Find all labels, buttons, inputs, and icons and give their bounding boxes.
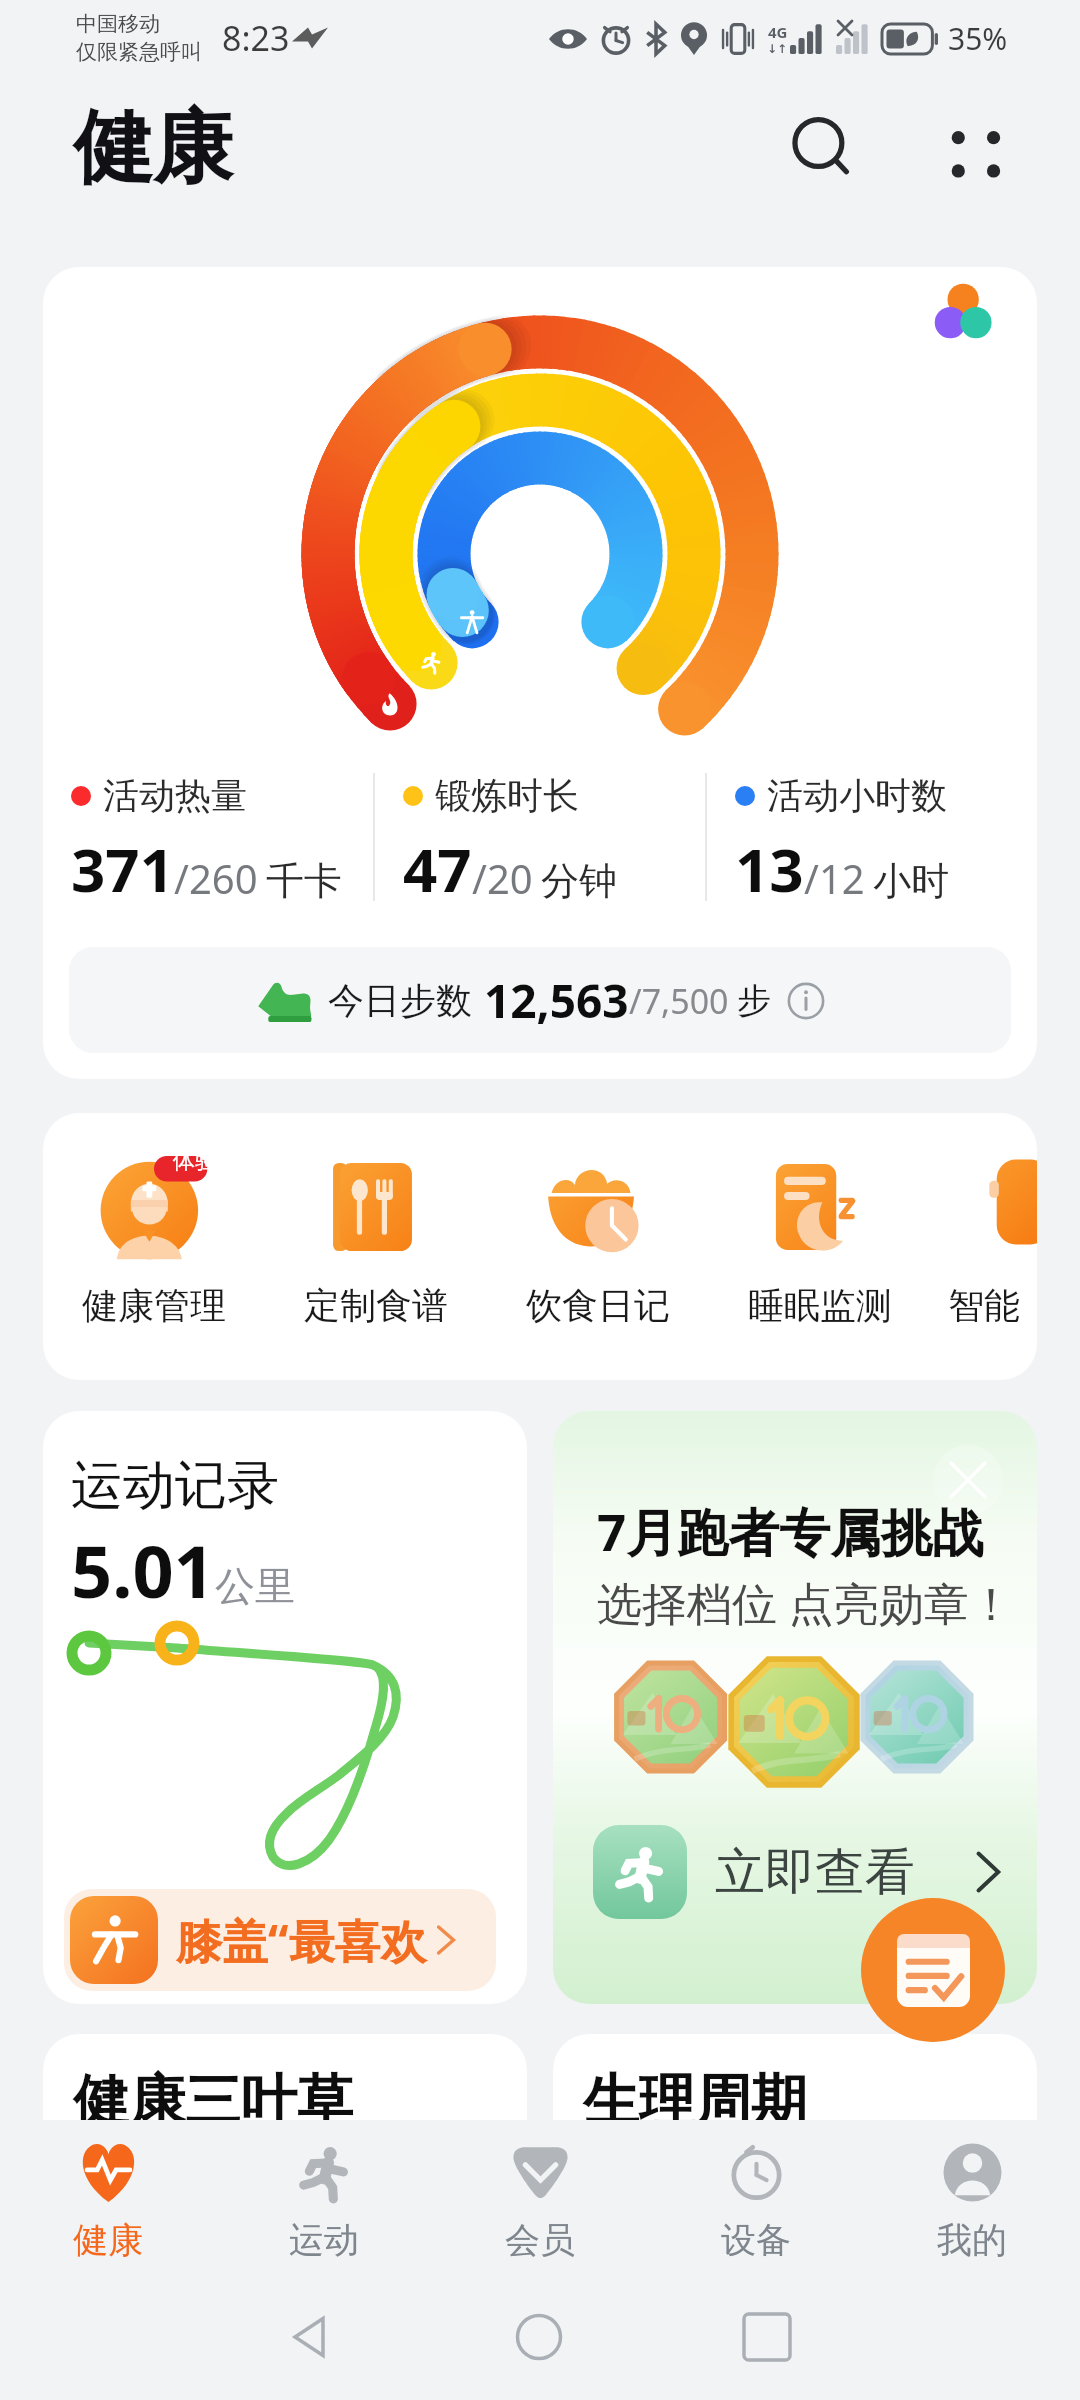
staticText: 会员 — [505, 2218, 575, 2262]
button[interactable]: More options — [912, 95, 1032, 215]
button[interactable]: Add record — [861, 1898, 1005, 2042]
staticText: 睡眠监测 — [748, 1283, 892, 1328]
staticText: 立即查看 — [715, 1841, 915, 1904]
staticText: 活动小时数 — [767, 773, 947, 818]
button[interactable]: Close — [933, 1445, 1003, 1515]
staticText: 健康 — [73, 98, 233, 199]
button[interactable]: Recents — [707, 2277, 827, 2397]
staticText: 8:23 — [222, 15, 290, 61]
staticText: 体验 — [173, 1147, 217, 1175]
staticText: 12,563 — [484, 969, 629, 1032]
staticText: 今日步数 — [328, 978, 472, 1023]
staticText: 371 — [71, 828, 174, 910]
button[interactable]: 健康三叶草 — [43, 2034, 527, 2214]
staticText: 定制食谱 — [304, 1283, 448, 1328]
button[interactable]: 智能 — [931, 1149, 1037, 1328]
button[interactable]: 饮食日记 — [487, 1149, 709, 1328]
staticText: ↓↑ — [767, 42, 788, 56]
button[interactable]: 生理周期 — [553, 2034, 1037, 2214]
staticText: 千卡 — [266, 857, 342, 905]
button[interactable]: Home — [479, 2277, 599, 2397]
staticText: 仅限紧急呼叫 — [76, 39, 202, 65]
staticText: 锻炼时长 — [435, 773, 579, 818]
button[interactable]: Search — [764, 90, 884, 210]
staticText: 分钟 — [541, 857, 617, 905]
staticText: 设备 — [721, 2218, 791, 2262]
staticText: 5.01 — [71, 1521, 215, 1619]
staticText: 生理周期 — [583, 2066, 807, 2137]
button[interactable]: Back — [250, 2277, 370, 2397]
staticText: 7月跑者专属挑战 — [597, 1496, 984, 1566]
button[interactable]: 今日步数 — [69, 947, 1011, 1053]
button[interactable]: 健康 — [0, 2120, 216, 2277]
button[interactable]: 设备 — [648, 2120, 864, 2277]
button[interactable]: 膝盖“最喜欢 — [64, 1889, 496, 1991]
staticText: 运动 — [289, 2218, 359, 2262]
button[interactable]: 活动热量 — [43, 267, 1037, 1079]
button[interactable]: 运动 — [216, 2120, 432, 2277]
staticText: /260 — [174, 851, 258, 905]
staticText: 47 — [403, 828, 472, 910]
button[interactable]: 定制食谱 — [265, 1149, 487, 1328]
staticText: 35% — [948, 18, 1008, 59]
staticText: 我的 — [937, 2218, 1007, 2262]
staticText: 健康三叶草 — [73, 2066, 353, 2137]
staticText: /7,500 — [629, 978, 729, 1024]
staticText: 中国移动 — [76, 11, 160, 37]
button[interactable]: 睡眠监测 — [709, 1149, 931, 1328]
staticText: 小时 — [873, 857, 949, 905]
staticText: 公里 — [215, 1561, 295, 1611]
button[interactable]: 会员 — [432, 2120, 648, 2277]
staticText: 活动热量 — [103, 773, 247, 818]
staticText: 4G — [768, 22, 788, 42]
staticText: 饮食日记 — [526, 1283, 670, 1328]
staticText: 健康 — [73, 2218, 143, 2262]
staticText: 选择档位 点亮勋章！ — [597, 1572, 1014, 1633]
staticText: 健康管理 — [82, 1283, 226, 1328]
staticText: 运动记录 — [71, 1453, 279, 1519]
staticText: 智能 — [948, 1283, 1020, 1328]
staticText: /20 — [472, 851, 533, 905]
staticText: 步 — [737, 979, 771, 1022]
button[interactable]: 运动记录 — [43, 1411, 527, 2004]
staticText: 13 — [735, 828, 804, 910]
staticText: 膝盖“最喜欢 — [176, 1909, 427, 1972]
button[interactable]: 体验 — [43, 1149, 265, 1328]
button[interactable]: 我的 — [864, 2120, 1080, 2277]
button[interactable]: Close — [553, 1411, 1037, 2004]
staticText: /12 — [804, 851, 865, 905]
button[interactable]: Health circles — [887, 267, 1037, 355]
